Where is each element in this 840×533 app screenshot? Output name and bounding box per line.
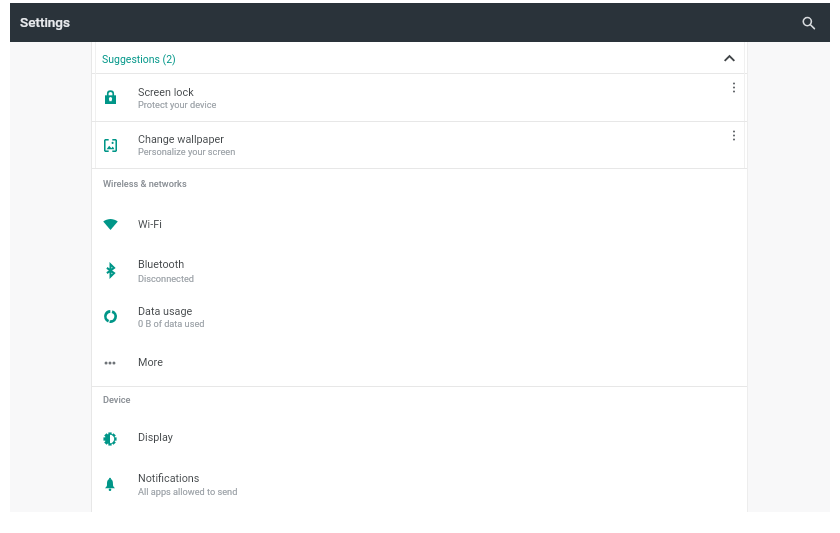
button[interactable]: Data usage [92,294,747,339]
button[interactable]: More options [725,78,743,96]
button[interactable]: Collapse suggestions [719,48,739,68]
button[interactable]: Change wallpaper [92,121,747,168]
staticText: Disconnected [138,273,194,284]
staticText: Suggestions (2) [102,53,176,65]
staticText: Wireless & networks [103,178,187,189]
button[interactable]: Bluetooth [92,247,747,294]
button[interactable]: Wi‑Fi [92,201,747,247]
staticText: Data usage [138,305,193,318]
staticText: Protect your device [138,99,217,110]
button[interactable]: Suggestions (2) [92,42,747,73]
button[interactable]: Display [92,415,747,461]
staticText: Personalize your screen [138,146,236,157]
staticText: All apps allowed to send [138,486,238,497]
staticText: Device [103,394,131,405]
button[interactable]: Screen lock [92,73,747,121]
button[interactable]: Search [795,10,823,38]
staticText: Display [138,431,173,444]
staticText: 0 B of data used [138,318,205,329]
staticText: Settings [20,14,70,30]
button[interactable]: Notifications [92,461,747,509]
staticText: Notifications [138,472,200,485]
staticText: More [138,356,163,369]
staticText: Screen lock [138,86,194,99]
staticText: Bluetooth [138,258,185,271]
staticText: Wi‑Fi [138,218,162,231]
staticText: Change wallpaper [138,133,224,146]
button[interactable]: More [92,339,747,385]
button[interactable]: More options [725,126,743,144]
